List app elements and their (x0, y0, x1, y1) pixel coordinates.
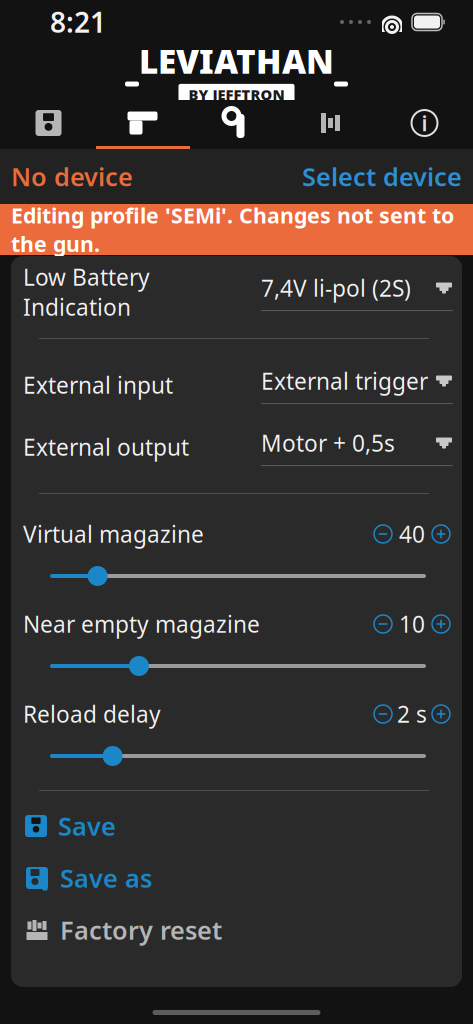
button[interactable]: Tools (189, 100, 283, 146)
staticText: Motor + 0,5s (261, 428, 395, 458)
button[interactable]: External input (11, 367, 462, 403)
button[interactable]: Decrease Near empty magazine (371, 612, 395, 636)
button[interactable]: Statistics (283, 100, 377, 146)
button[interactable]: Factory reset (11, 917, 462, 943)
button[interactable]: External output (11, 429, 462, 465)
staticText: Virtual magazine (23, 519, 204, 549)
button[interactable]: Gun settings (95, 100, 189, 146)
staticText: Save as (60, 861, 152, 895)
button[interactable]: Save as (11, 865, 462, 891)
button[interactable]: Select device (302, 160, 462, 193)
staticText: Select device (302, 160, 462, 193)
button[interactable]: Low Battery Indication (11, 274, 462, 310)
staticText: Low Battery Indication (23, 262, 150, 322)
staticText: 40 (399, 519, 425, 549)
button[interactable]: Save (11, 813, 462, 839)
staticText: 2 s (397, 699, 427, 729)
button[interactable]: Increase Near empty magazine (429, 612, 453, 636)
staticText: BY JEFFTRON (188, 85, 284, 104)
button[interactable]: Info (377, 100, 471, 146)
staticText: Editing profile 'SEMi'. Changes not sent… (11, 201, 454, 258)
staticText: 8:21 (50, 3, 106, 41)
button[interactable]: Increase Virtual magazine (429, 522, 453, 546)
staticText: No device (11, 160, 133, 193)
staticText: External output (23, 432, 189, 462)
staticText: Save (58, 809, 116, 843)
staticText: External trigger (261, 366, 428, 396)
staticText: i (421, 109, 427, 137)
staticText: Near empty magazine (23, 609, 260, 639)
staticText: LEVIATHAN (139, 39, 334, 83)
button[interactable]: Increase Reload delay (429, 702, 453, 726)
staticText: 7,4V li-pol (2S) (261, 273, 411, 303)
button[interactable]: Decrease Virtual magazine (371, 522, 395, 546)
staticText: Factory reset (60, 913, 222, 947)
staticText: External input (23, 370, 173, 400)
staticText: 10 (399, 609, 425, 639)
button[interactable]: No device (11, 160, 133, 193)
button[interactable]: Profiles (1, 100, 95, 146)
button[interactable]: Decrease Reload delay (371, 702, 395, 726)
staticText: Reload delay (23, 699, 161, 729)
